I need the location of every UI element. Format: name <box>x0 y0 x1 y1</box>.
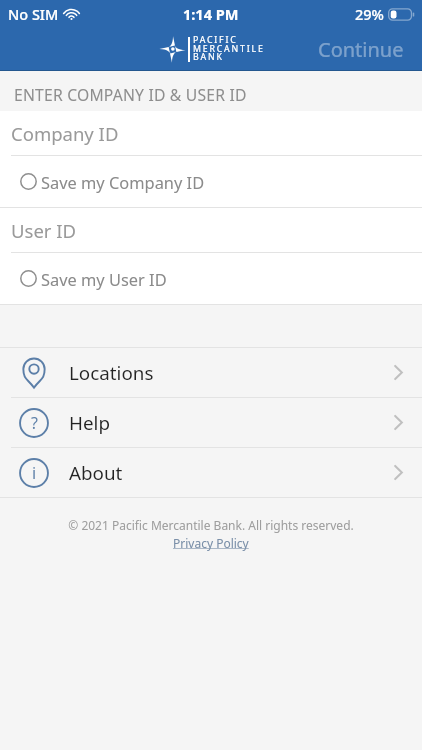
staticText: PACIFIC <box>193 34 238 46</box>
button[interactable]: Company ID <box>0 111 422 155</box>
staticText: © 2021 Pacific Mercantile Bank. All righ… <box>68 517 354 533</box>
button[interactable]: Save my User ID <box>0 253 422 304</box>
staticText: 1:14 PM <box>183 4 239 24</box>
button[interactable]: i <box>0 448 422 497</box>
staticText: Save my Company ID <box>41 171 205 193</box>
staticText: 29% <box>355 4 384 24</box>
button[interactable]: Privacy Policy <box>173 535 249 551</box>
staticText: ? <box>31 412 38 434</box>
staticText: Continue <box>318 36 404 63</box>
staticText: BANK <box>193 51 224 63</box>
staticText: Save my User ID <box>41 268 167 290</box>
button[interactable]: Continue <box>304 28 422 71</box>
staticText: i <box>32 462 37 484</box>
staticText: About <box>69 460 123 486</box>
staticText: No SIM <box>8 4 59 24</box>
staticText: Help <box>69 410 110 436</box>
staticText: ENTER COMPANY ID & USER ID <box>14 84 247 105</box>
staticText: Locations <box>69 360 154 386</box>
button[interactable]: ? <box>0 398 422 447</box>
staticText: Company ID <box>11 121 119 146</box>
other: Open <box>394 465 403 480</box>
other: Open <box>394 415 403 430</box>
button[interactable]: Locations <box>0 348 422 397</box>
button[interactable]: User ID <box>0 208 422 252</box>
button[interactable]: Save my Company ID <box>0 156 422 207</box>
staticText: MERCANTILE <box>193 43 265 55</box>
staticText: Privacy Policy <box>173 535 249 551</box>
staticText: User ID <box>11 218 77 243</box>
other: Open <box>394 365 403 380</box>
